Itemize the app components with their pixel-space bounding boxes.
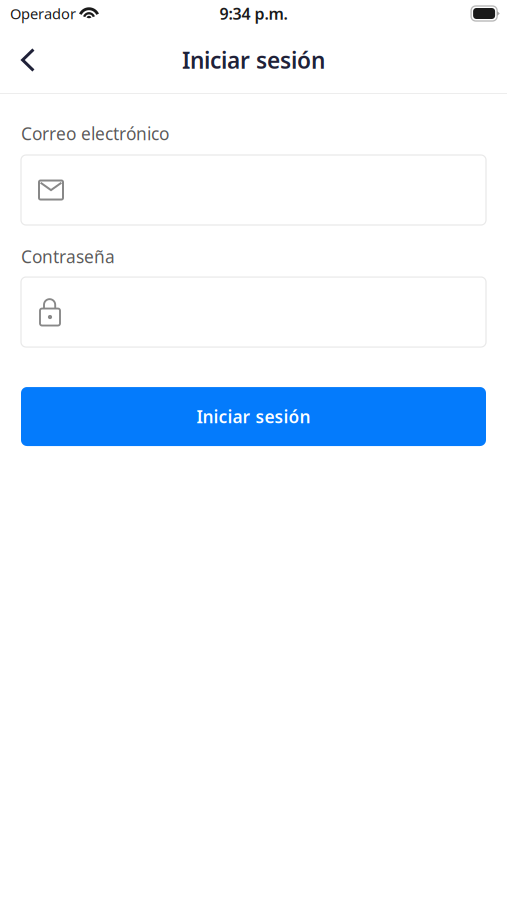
- staticText: Iniciar sesión: [182, 45, 325, 75]
- staticText: Operador: [10, 4, 76, 23]
- staticText: Iniciar sesión: [196, 405, 310, 428]
- staticText: Contraseña: [21, 245, 115, 268]
- staticText: 9:34 p.m.: [219, 3, 287, 24]
- button[interactable]: [21, 277, 486, 347]
- button[interactable]: Iniciar sesión: [21, 387, 486, 446]
- staticText: Correo electrónico: [21, 122, 169, 145]
- button[interactable]: Back: [6, 38, 50, 82]
- button[interactable]: [21, 155, 486, 225]
